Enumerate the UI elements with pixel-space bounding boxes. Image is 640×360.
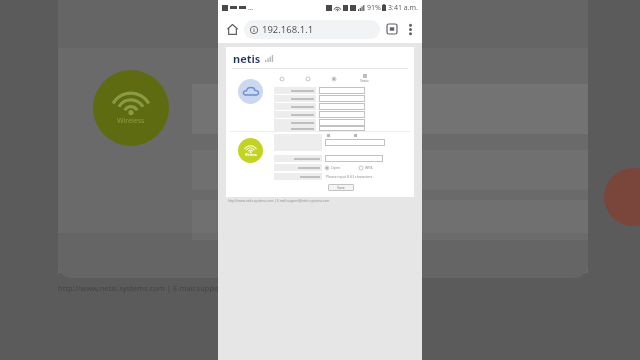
button[interactable]: Text field [319,87,365,94]
staticText: Static [360,78,369,83]
button[interactable]: Home [223,20,241,38]
staticText: WPA [365,165,373,170]
staticText: http://www.netis-systems.com | E-mail:su… [228,199,330,203]
button[interactable]: Save [328,184,354,191]
staticText: ... [248,4,254,12]
button[interactable]: Text field [319,95,365,102]
button[interactable]: Text field [325,155,383,162]
button[interactable]: Wireless settings [238,138,263,163]
button[interactable]: Option [332,77,336,81]
button[interactable]: 192.168.1.1 [244,20,380,39]
button[interactable]: Option Open [325,165,341,170]
staticText: 192.168.1.1 [262,23,314,36]
staticText: Save [337,185,345,190]
staticText: 91% [367,3,381,13]
staticText: netis [233,51,261,66]
staticText: Please input 8-63 characters [326,174,373,179]
button[interactable]: Text field [319,111,365,118]
button[interactable]: Tabs [384,21,400,37]
staticText: Wireless [117,116,145,126]
button[interactable]: Option [306,77,310,81]
button[interactable]: Option WPA [359,165,373,170]
staticText: http://www.netis-systems.com | E-mail:su… [58,283,297,293]
button[interactable]: Text field [319,119,365,126]
staticText: Wireless [245,153,257,157]
staticText: Open [331,165,341,170]
button[interactable]: Text field [319,126,365,131]
button[interactable]: Text field [319,103,365,110]
button[interactable]: More options [403,22,417,36]
button[interactable]: Internet settings [238,79,263,104]
staticText: 3:41 a.m. [388,3,418,13]
button[interactable]: Option [280,77,284,81]
